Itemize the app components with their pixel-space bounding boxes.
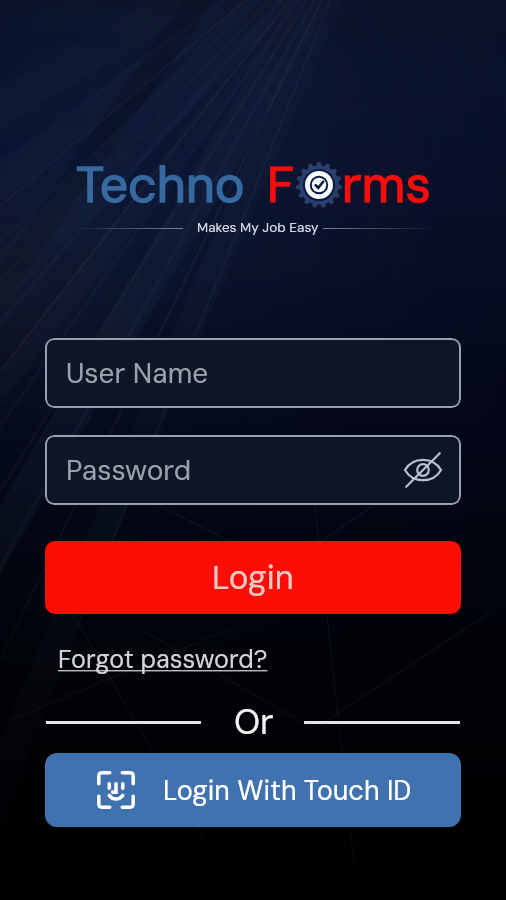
- staticText: Forgot password?: [58, 643, 268, 676]
- button[interactable]: User Name: [45, 338, 461, 408]
- button[interactable]: Forgot password?: [58, 643, 268, 676]
- staticText: Techno: [76, 152, 245, 217]
- button[interactable]: Show password: [399, 446, 447, 494]
- staticText: Login With Touch ID: [163, 773, 412, 808]
- staticText: Login: [212, 556, 294, 599]
- staticText: rms: [342, 152, 431, 217]
- staticText: Password: [66, 452, 192, 488]
- staticText: Or: [234, 699, 274, 745]
- button[interactable]: Password: [45, 435, 461, 505]
- staticText: F: [267, 152, 294, 217]
- button[interactable]: Login With Touch ID: [45, 753, 461, 827]
- staticText: User Name: [66, 355, 209, 391]
- staticText: Makes My Job Easy: [197, 219, 319, 237]
- button[interactable]: Login: [45, 541, 461, 614]
